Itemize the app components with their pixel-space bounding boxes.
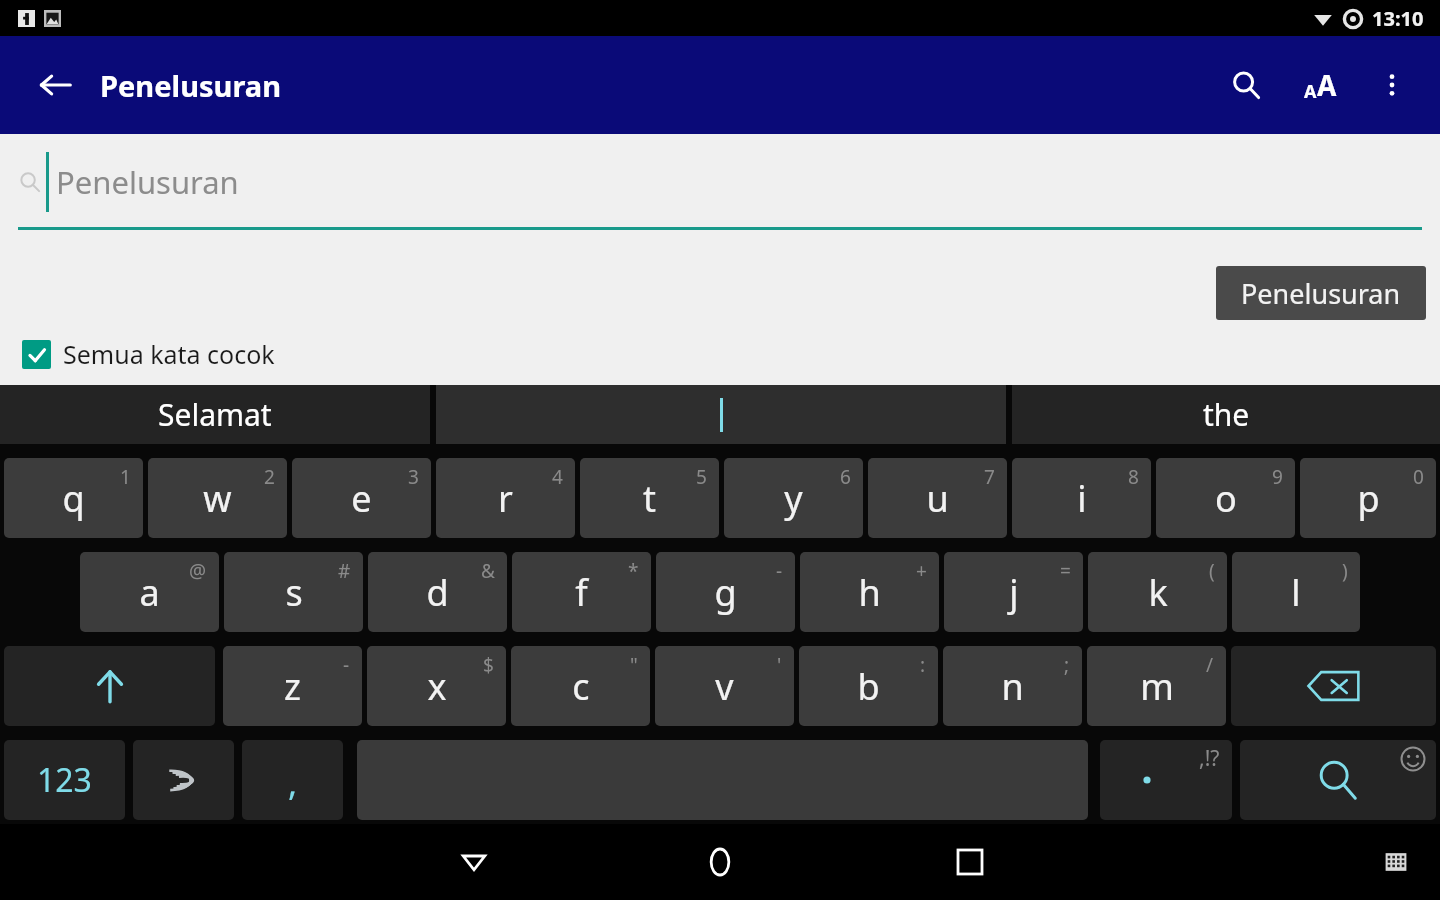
button[interactable]: Back [444, 832, 504, 892]
button[interactable]: Semua kata cocok [22, 337, 275, 371]
staticText: 2 [264, 464, 275, 490]
button[interactable]: Search [1216, 55, 1276, 115]
staticText: v [715, 662, 734, 711]
staticText: Penelusuran [100, 66, 281, 105]
staticText: 7 [984, 464, 995, 490]
staticText: s [285, 568, 303, 617]
button[interactable]: the [1012, 385, 1440, 444]
staticText: - [776, 558, 783, 584]
button[interactable]: Selamat [0, 385, 430, 444]
staticText: x [427, 662, 447, 711]
staticText: 6 [840, 464, 851, 490]
button[interactable]: Hide keyboard [1372, 838, 1420, 886]
staticText: Penelusuran [1241, 275, 1401, 312]
staticText: A [1317, 66, 1337, 104]
staticText: the [1203, 394, 1250, 435]
button[interactable]: n [943, 646, 1082, 726]
staticText: Penelusuran [56, 161, 239, 203]
button[interactable]: r [436, 458, 575, 538]
staticText: t [643, 474, 656, 523]
staticText: b [857, 662, 880, 711]
staticText: + [916, 558, 927, 584]
staticText: a [139, 568, 160, 617]
staticText: , [288, 760, 298, 806]
button[interactable]: e [292, 458, 431, 538]
staticText: l [1291, 568, 1301, 617]
staticText: p [1357, 474, 1380, 523]
button[interactable]: Home [690, 832, 750, 892]
button[interactable]: l [1232, 552, 1360, 632]
staticText: / [1206, 652, 1214, 678]
staticText: 1 [120, 464, 131, 490]
staticText: e [351, 474, 372, 523]
staticText: h [858, 568, 881, 617]
staticText: - [343, 652, 350, 678]
staticText: 4 [552, 464, 563, 490]
button[interactable]: i [1012, 458, 1151, 538]
staticText: 5 [696, 464, 707, 490]
staticText: m [1140, 662, 1174, 711]
staticText: & [481, 558, 495, 584]
button[interactable]: , [242, 740, 343, 820]
button[interactable]: j [944, 552, 1083, 632]
staticText: Selamat [158, 394, 272, 435]
button[interactable]: Shift [4, 646, 215, 726]
staticText: o [1215, 474, 1237, 523]
staticText: # [338, 558, 351, 584]
staticText: = [1060, 558, 1071, 584]
staticText: A [1304, 79, 1317, 104]
button[interactable]: a [80, 552, 219, 632]
button[interactable]: More options [1364, 57, 1420, 113]
button[interactable]: y [724, 458, 863, 538]
button[interactable]: s [224, 552, 363, 632]
button[interactable]: 123 [4, 740, 125, 820]
button[interactable]: q [4, 458, 143, 538]
button[interactable]: b [799, 646, 938, 726]
staticText: 3 [408, 464, 419, 490]
button[interactable]: Backspace [1231, 646, 1436, 726]
button[interactable]: c [511, 646, 650, 726]
button[interactable]: g [656, 552, 795, 632]
staticText: 13:10 [1372, 5, 1424, 32]
button[interactable]: t [580, 458, 719, 538]
staticText: Semua kata cocok [63, 337, 275, 371]
button[interactable]: Back [28, 58, 82, 112]
staticText: ; [1064, 652, 1070, 678]
staticText: " [630, 652, 638, 678]
button[interactable]: Penelusuran [1216, 266, 1426, 320]
button[interactable]: Text size [1290, 55, 1350, 115]
staticText: j [1009, 568, 1019, 617]
staticText: 0 [1413, 464, 1424, 490]
button[interactable]: p [1300, 458, 1436, 538]
button[interactable]: Penelusuran [18, 134, 1422, 230]
button[interactable] [436, 385, 1006, 444]
button[interactable]: x [367, 646, 506, 726]
staticText: 8 [1128, 464, 1139, 490]
button[interactable]: m [1087, 646, 1226, 726]
staticText: f [575, 568, 588, 617]
button[interactable]: u [868, 458, 1007, 538]
staticText: ) [1342, 558, 1348, 584]
button[interactable]: o [1156, 458, 1295, 538]
button[interactable]: d [368, 552, 507, 632]
button[interactable]: k [1088, 552, 1227, 632]
staticText: : [920, 652, 926, 678]
staticText: i [1077, 474, 1087, 523]
staticText: k [1148, 568, 1168, 617]
button[interactable]: Recents [940, 832, 1000, 892]
staticText: y [784, 474, 803, 523]
button[interactable]: Switch input method [133, 740, 234, 820]
staticText: 9 [1272, 464, 1283, 490]
button[interactable]: v [655, 646, 794, 726]
staticText: 123 [37, 758, 92, 802]
staticText: g [714, 568, 737, 617]
button[interactable]: ,!? [1100, 740, 1232, 820]
button[interactable]: Search [1240, 740, 1436, 820]
staticText: @ [189, 558, 207, 584]
button[interactable]: z [223, 646, 362, 726]
button[interactable]: f [512, 552, 651, 632]
button[interactable]: h [800, 552, 939, 632]
button[interactable]: w [148, 458, 287, 538]
staticText: n [1001, 662, 1024, 711]
